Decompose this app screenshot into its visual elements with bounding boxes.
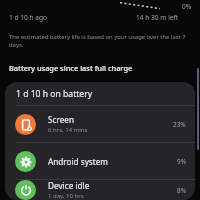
button[interactable]: Android system [5,143,195,179]
staticText: 6 hrs, 14 mins [48,126,88,134]
staticText: Android system [48,156,109,167]
staticText: 1 day, 10 hrs [48,192,84,200]
staticText: 23% [173,120,186,129]
staticText: 14 h 30 m left [136,13,179,22]
staticText: Device idle [48,180,90,191]
staticText: The estimated battery life is based on y… [9,33,192,49]
staticText: 8% [177,186,186,195]
staticText: 9% [177,157,186,166]
staticText: 1 d 10 h on battery [16,88,93,100]
button[interactable]: Device idle [5,180,195,200]
staticText: 1 d 10 h ago [9,13,48,22]
staticText: 0% [182,2,192,11]
button[interactable]: 1 d 10 h on battery [5,82,195,105]
staticText: Battery usage since last full charge [9,63,133,73]
button[interactable]: Screen [5,106,195,142]
staticText: Screen [48,114,74,125]
